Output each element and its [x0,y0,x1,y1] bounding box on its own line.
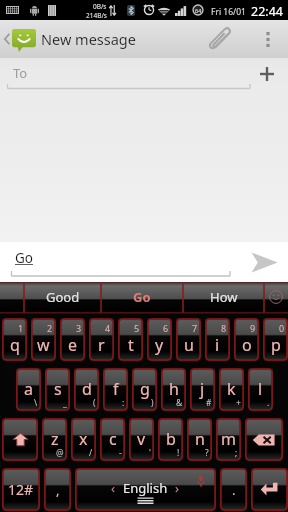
button[interactable]: y [147,318,172,361]
staticText: j [200,378,205,400]
staticText: 64 [195,7,202,14]
button[interactable]: g [132,368,157,411]
staticText: _ [63,397,67,409]
button[interactable]: . [220,468,247,511]
button[interactable]: a [16,368,41,411]
button[interactable]: Emoji [264,282,288,314]
staticText: 2 [47,322,53,334]
button[interactable]: h [161,368,186,411]
button[interactable]: f [103,368,128,411]
button[interactable]: Go [0,242,240,282]
staticText: Fri 16/01 [211,6,246,18]
staticText: 214B/s [86,11,107,20]
staticText: s [54,378,62,400]
staticText: 12# [8,480,34,499]
staticText: 7 [192,322,198,334]
button[interactable]: Attach [202,20,248,58]
staticText: ' [149,447,151,459]
staticText: 22:44 [251,3,283,20]
staticText: a [24,378,33,400]
staticText: English [123,479,168,497]
staticText: u [184,334,194,356]
staticText: g [140,378,150,400]
staticText: ; [235,447,238,459]
staticText: Good [46,288,80,306]
button[interactable]: v [129,418,154,461]
staticText: / [89,447,93,459]
staticText: : [122,397,125,409]
staticText: v [137,428,146,450]
button[interactable]: r [89,318,114,361]
button[interactable]: Good [24,282,101,314]
other: Back [4,33,10,45]
button[interactable]: k [219,368,244,411]
button[interactable]: Space [75,468,216,511]
button[interactable]: To [0,58,288,89]
button[interactable]: q [2,318,27,361]
button[interactable]: Go [101,282,183,314]
button[interactable]: Add recipient [246,58,288,89]
button[interactable]: Enter [251,468,288,511]
staticText: o [242,334,252,356]
staticText: › [175,479,180,497]
staticText: + [236,397,241,409]
staticText: 5 [134,322,140,334]
staticText: 3 [76,322,82,334]
staticText: k [227,378,236,400]
staticText: m [221,428,236,450]
button[interactable]: How [183,282,264,314]
staticText: e [68,334,78,356]
button[interactable]: p [263,318,288,361]
staticText: . [232,481,236,499]
staticText: @ [56,447,64,459]
staticText: b [166,428,176,450]
button[interactable]: o [234,318,259,361]
staticText: ( [93,397,96,409]
button[interactable]: j [190,368,215,411]
staticText: 4 [105,322,111,334]
staticText: 0B/s [93,2,107,11]
staticText: y [155,334,164,356]
button[interactable]: l [248,368,273,411]
staticText: w [37,334,50,356]
staticText: 6 [163,322,169,334]
staticText: . [267,397,270,409]
staticText: 0 [279,322,285,334]
button[interactable]: u [176,318,201,361]
button[interactable]: c [100,418,125,461]
staticText: , [56,481,60,499]
staticText: 1 [18,322,24,334]
staticText: Go [133,288,151,306]
staticText: ? [205,447,209,459]
button[interactable]: x [71,418,96,461]
button[interactable]: z [42,418,67,461]
button[interactable]: , [44,468,71,511]
button[interactable]: Back [0,20,160,58]
staticText: r [98,334,105,356]
staticText: ) [151,397,154,409]
button[interactable]: Send [240,242,288,282]
button[interactable]: i [205,318,230,361]
button[interactable]: w [31,318,56,361]
staticText: 8 [221,322,227,334]
button[interactable]: t [118,318,143,361]
button[interactable]: b [158,418,183,461]
staticText: ! [177,447,180,459]
staticText: New message [41,29,136,49]
staticText: ‹ [111,479,116,497]
button[interactable]: e [60,318,85,361]
button[interactable]: Shift [2,418,38,461]
staticText: h [169,378,179,400]
staticText: i [215,334,220,356]
button[interactable]: m [216,418,241,461]
button[interactable]: More options [248,20,288,58]
button[interactable]: s [45,368,70,411]
staticText: # [206,397,212,409]
staticText: c [109,428,117,450]
button[interactable]: d [74,368,99,411]
button[interactable]: n [187,418,212,461]
staticText: f [113,378,119,400]
staticText: l [258,378,263,400]
button[interactable]: Backspace [245,418,283,461]
button[interactable]: Symbols [2,468,40,511]
